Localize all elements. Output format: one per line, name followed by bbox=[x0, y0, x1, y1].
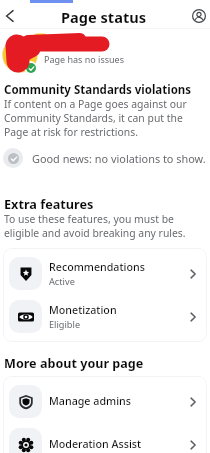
staticText: Community Standards violations bbox=[4, 82, 192, 98]
staticText: Page status bbox=[61, 7, 147, 27]
staticText: Extra features bbox=[4, 195, 94, 212]
staticText: More about your page bbox=[4, 355, 144, 372]
button[interactable]: Back bbox=[0, 6, 20, 26]
staticText: To use these features, you must be eligi… bbox=[4, 212, 190, 240]
staticText: Recommendations bbox=[49, 260, 145, 275]
button[interactable]: Manage admins bbox=[3, 380, 207, 423]
staticText: Manage admins bbox=[49, 394, 131, 409]
button[interactable]: Recommendations bbox=[3, 252, 207, 295]
staticText: Eligible bbox=[49, 318, 81, 331]
staticText: Moderation Assist bbox=[49, 437, 142, 452]
staticText: Monetization bbox=[49, 303, 117, 318]
button[interactable]: Moderation Assist bbox=[3, 423, 207, 453]
button[interactable]: Account bbox=[189, 6, 209, 26]
staticText: Page has no issues bbox=[44, 53, 124, 65]
button[interactable]: Monetization bbox=[3, 295, 207, 338]
staticText: Active bbox=[49, 275, 75, 288]
staticText: If content on a Page goes against our Co… bbox=[4, 97, 196, 139]
staticText: Good news: no violations to show. bbox=[32, 151, 206, 166]
